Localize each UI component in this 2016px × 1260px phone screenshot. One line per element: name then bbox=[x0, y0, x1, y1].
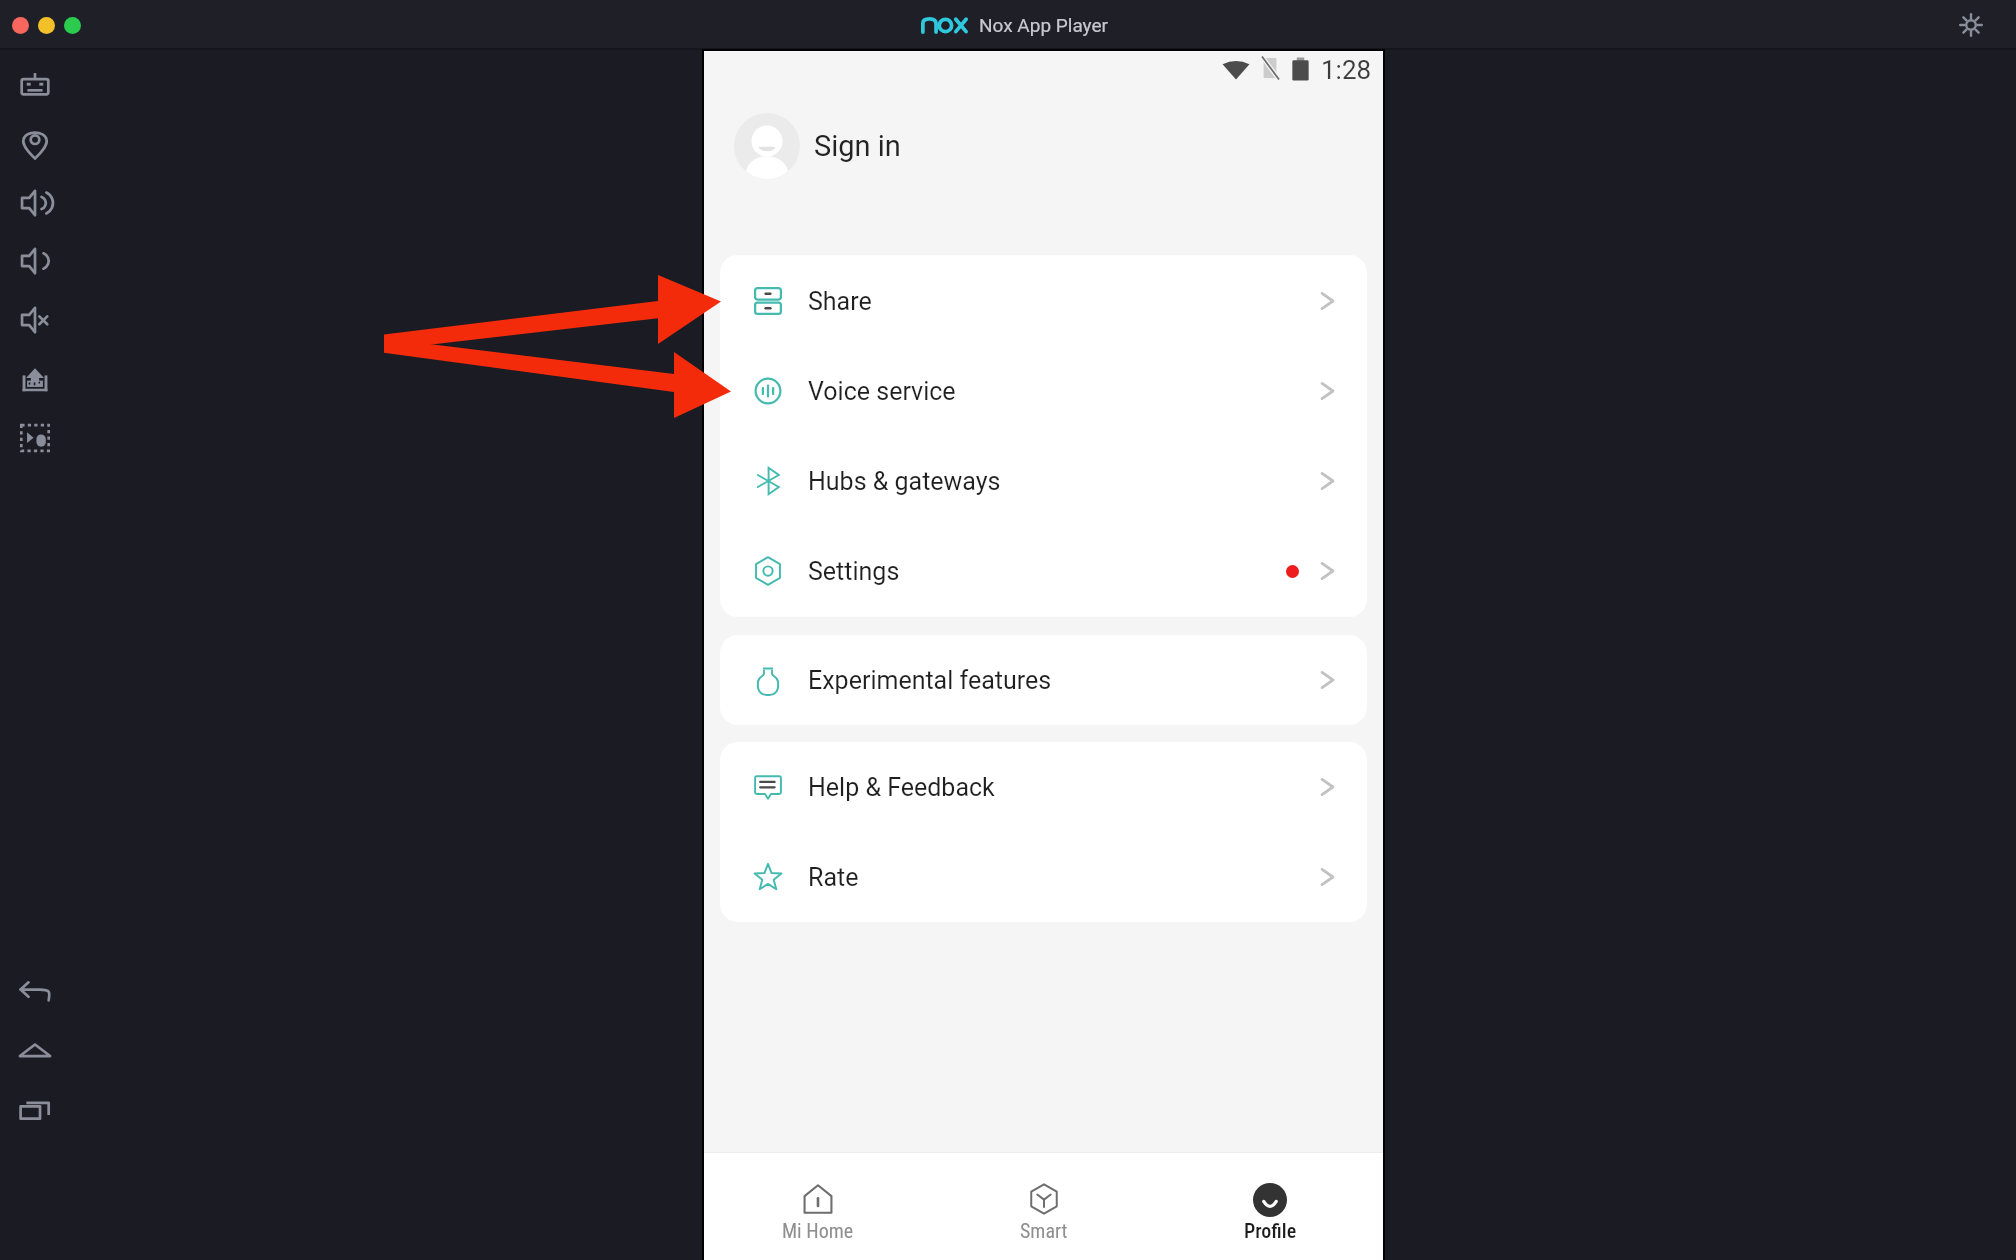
button[interactable]: Smart bbox=[931, 1152, 1157, 1260]
staticText: Experimental features bbox=[808, 666, 1052, 695]
staticText: Hubs & gateways bbox=[808, 467, 1001, 496]
button[interactable]: Hubs & gateways bbox=[720, 436, 1367, 526]
button[interactable]: Back bbox=[17, 973, 53, 1009]
button[interactable]: Settings bbox=[1959, 13, 1983, 37]
button[interactable]: Profile bbox=[1157, 1152, 1383, 1260]
button[interactable]: Emulator control bbox=[17, 68, 53, 104]
button[interactable]: Sign in bbox=[704, 113, 1383, 179]
button[interactable]: Emulator control bbox=[17, 243, 53, 279]
staticText: 1:28 bbox=[1321, 55, 1372, 85]
staticText: Sign in bbox=[814, 129, 901, 163]
staticText: Help & Feedback bbox=[808, 773, 995, 802]
button[interactable]: Experimental features bbox=[720, 635, 1367, 725]
button[interactable]: Close bbox=[12, 17, 29, 34]
button[interactable]: Settings bbox=[720, 526, 1367, 616]
button[interactable]: Minimise bbox=[38, 17, 55, 34]
button[interactable]: Voice service bbox=[720, 346, 1367, 436]
button[interactable]: Emulator control bbox=[17, 126, 53, 162]
button[interactable]: Emulator control bbox=[17, 302, 53, 338]
staticText: Share bbox=[808, 287, 872, 316]
button[interactable]: Emulator control bbox=[17, 361, 53, 397]
staticText: Settings bbox=[808, 557, 900, 586]
staticText: Voice service bbox=[808, 377, 956, 406]
button[interactable]: Emulator control bbox=[17, 420, 53, 456]
button[interactable]: Rate bbox=[720, 832, 1367, 922]
staticText: Profile bbox=[1244, 1219, 1297, 1242]
staticText: Rate bbox=[808, 863, 859, 892]
button[interactable]: Maximise bbox=[64, 17, 81, 34]
button[interactable]: Recent apps bbox=[17, 1092, 53, 1128]
button[interactable]: Mi Home bbox=[704, 1152, 931, 1260]
staticText: Smart bbox=[1020, 1219, 1068, 1242]
button[interactable]: Emulator control bbox=[17, 185, 53, 221]
button[interactable]: Help & Feedback bbox=[720, 742, 1367, 832]
button[interactable]: Share bbox=[720, 256, 1367, 346]
staticText: Nox App Player bbox=[979, 14, 1108, 36]
button[interactable]: Home bbox=[17, 1033, 53, 1069]
staticText: Mi Home bbox=[782, 1219, 854, 1242]
